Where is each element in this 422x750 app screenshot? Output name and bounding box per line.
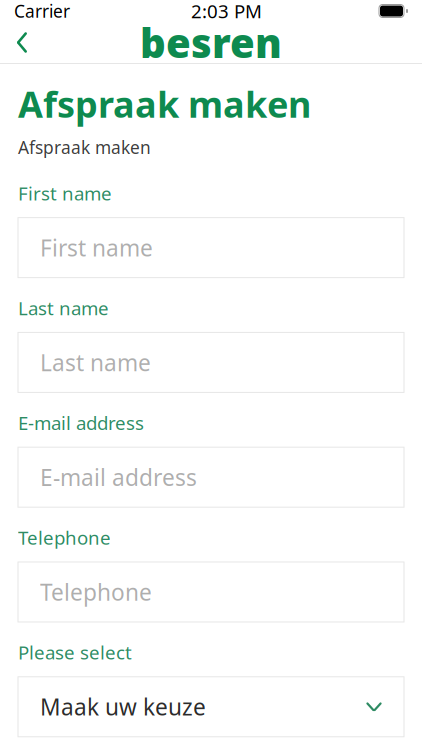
button[interactable]: Telephone xyxy=(18,562,404,622)
button[interactable]: E-mail address xyxy=(18,447,404,507)
staticText: Last name xyxy=(18,296,109,320)
staticText: besren xyxy=(140,16,282,69)
button[interactable]: Last name xyxy=(18,332,404,392)
staticText: Please select xyxy=(18,640,132,665)
staticText: Carrier xyxy=(14,0,70,22)
staticText: First name xyxy=(40,233,153,263)
staticText: Afspraak maken xyxy=(18,80,311,128)
staticText: E-mail address xyxy=(40,462,197,492)
staticText: Maak uw keuze xyxy=(40,692,206,722)
staticText: First name xyxy=(18,181,112,206)
staticText: Telephone xyxy=(40,577,152,607)
button[interactable]: First name xyxy=(18,218,404,278)
staticText: 2:03 PM xyxy=(191,0,262,23)
button[interactable]: Back xyxy=(0,22,44,62)
staticText: Telephone xyxy=(18,525,111,550)
staticText: E-mail address xyxy=(18,410,144,435)
staticText: Afspraak maken xyxy=(18,136,151,159)
button[interactable]: Maak uw keuze xyxy=(18,677,404,737)
staticText: Last name xyxy=(40,347,151,377)
button[interactable]: besren home xyxy=(140,29,282,55)
